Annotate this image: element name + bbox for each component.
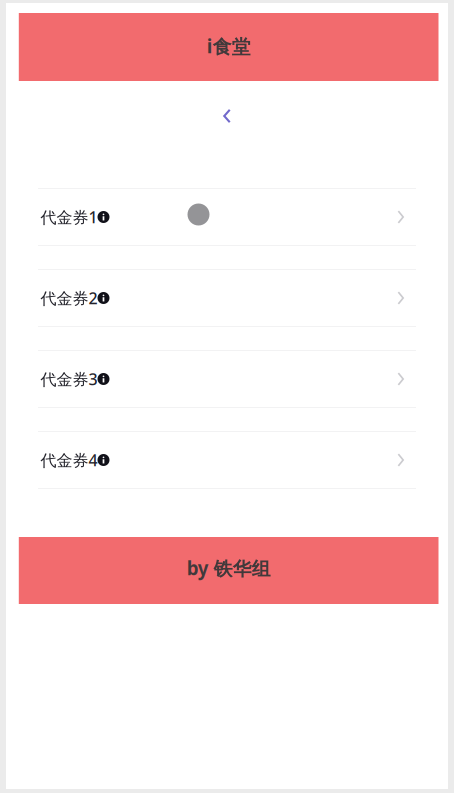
staticText: by 铁华组 (187, 556, 271, 580)
staticText: 代金券1 (40, 206, 97, 228)
button[interactable]: Back (204, 93, 250, 139)
button[interactable]: i食堂 (19, 13, 438, 81)
staticText: 代金券3 (40, 368, 97, 390)
staticText: i食堂 (207, 34, 251, 58)
button[interactable]: 代金券1 (38, 188, 416, 246)
button[interactable]: 代金券4 (38, 431, 416, 489)
button[interactable]: 代金券3 (38, 350, 416, 408)
button[interactable]: by 铁华组 (19, 537, 438, 604)
staticText: 代金券4 (40, 449, 97, 471)
button[interactable]: 代金券2 (38, 269, 416, 327)
staticText: 代金券2 (40, 287, 97, 309)
